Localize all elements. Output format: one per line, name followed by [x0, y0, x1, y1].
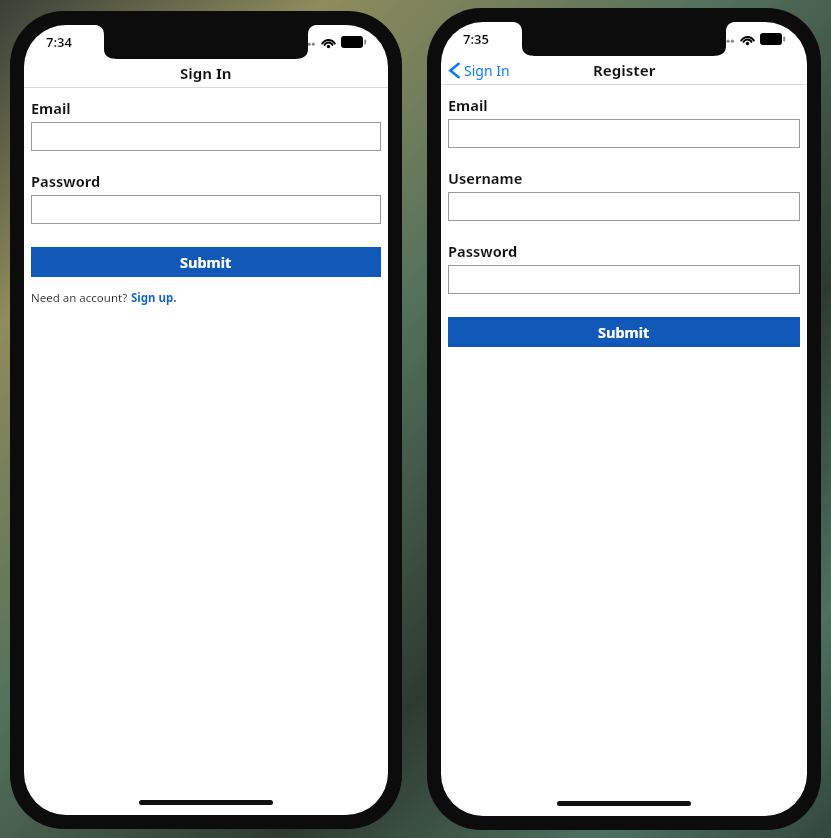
button[interactable]: Back: [449, 61, 510, 80]
staticText: Need an account?: [31, 290, 131, 306]
button[interactable]: [448, 119, 800, 148]
staticText: Sign In: [464, 61, 510, 80]
staticText: Email: [31, 98, 71, 118]
button[interactable]: Submit: [448, 317, 800, 347]
button[interactable]: [448, 265, 800, 294]
staticText: Username: [448, 168, 523, 188]
staticText: Submit: [180, 252, 232, 272]
button[interactable]: [31, 195, 381, 224]
other: Back: [449, 62, 460, 79]
staticText: 7:34: [46, 33, 72, 51]
button[interactable]: Submit: [31, 247, 381, 277]
staticText: Password: [448, 241, 518, 261]
staticText: Password: [31, 171, 101, 191]
button[interactable]: [448, 192, 800, 221]
staticText: 7:35: [463, 30, 489, 48]
button[interactable]: [31, 122, 381, 151]
staticText: Submit: [598, 322, 650, 342]
staticText: Register: [593, 60, 656, 80]
button[interactable]: Sign up.: [131, 290, 177, 306]
staticText: Email: [448, 95, 488, 115]
staticText: Sign up.: [131, 290, 177, 306]
staticText: Sign In: [180, 63, 232, 83]
